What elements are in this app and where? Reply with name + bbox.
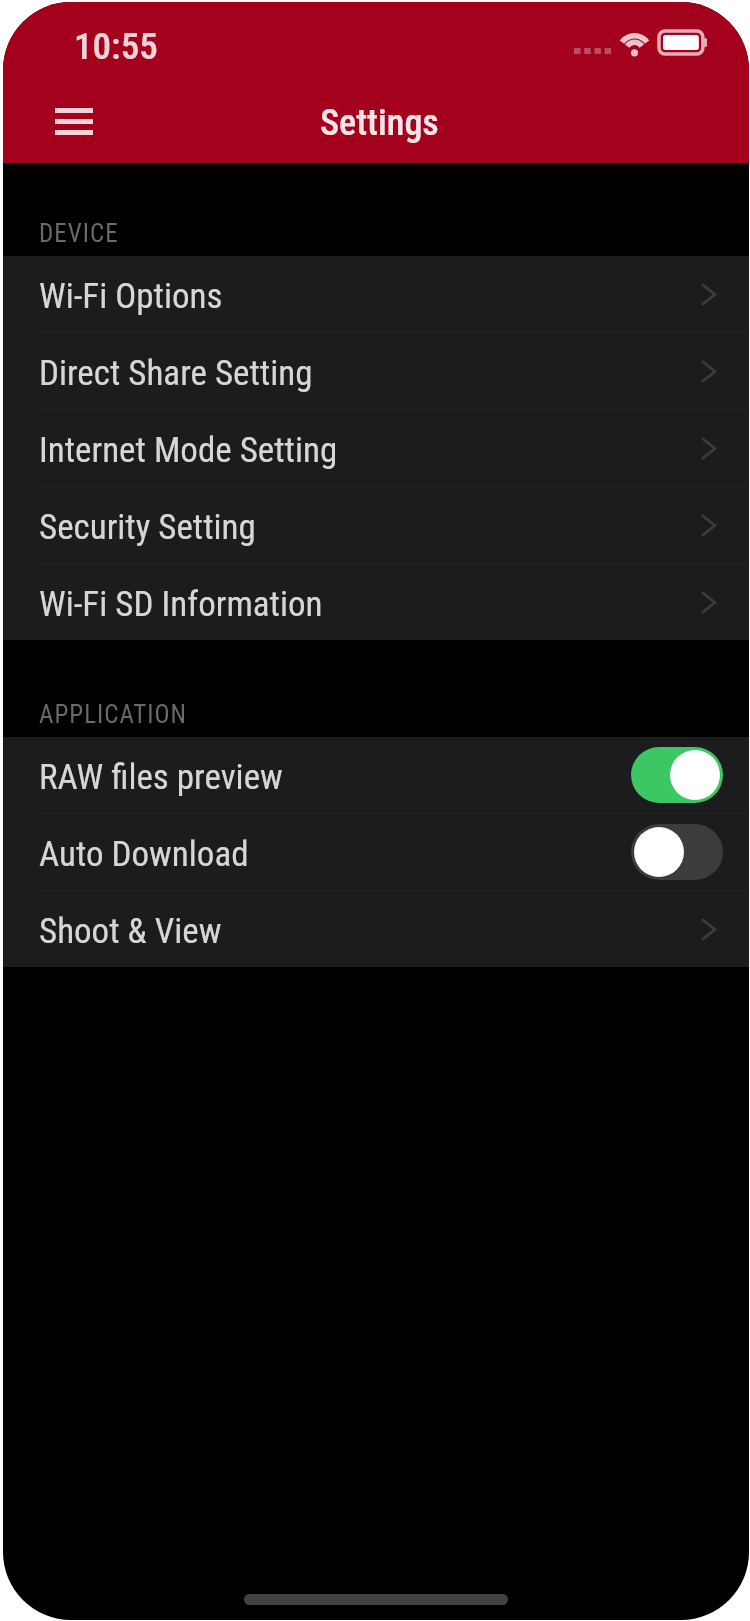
staticText: Auto Download	[39, 834, 249, 875]
staticText: Wi-Fi SD Information	[39, 584, 323, 625]
staticText: Security Setting	[39, 507, 256, 548]
button[interactable]: Open navigation menu	[40, 95, 108, 147]
staticText: Direct Share Setting	[39, 353, 313, 394]
button[interactable]: Wi-Fi Options	[3, 256, 749, 332]
staticText: APPLICATION	[39, 700, 188, 729]
button[interactable]: RAW files preview, on	[631, 747, 723, 803]
staticText: Settings	[320, 102, 439, 144]
button[interactable]: Direct Share Setting	[3, 333, 749, 409]
button[interactable]: Internet Mode Setting	[3, 410, 749, 486]
button[interactable]: Auto Download, off	[631, 824, 723, 880]
button[interactable]: Wi-Fi SD Information	[3, 564, 749, 640]
staticText: Internet Mode Setting	[39, 430, 338, 471]
staticText: DEVICE	[39, 219, 119, 248]
staticText: 10:55	[74, 25, 158, 68]
button[interactable]: RAW files preview	[3, 737, 749, 813]
staticText: RAW files preview	[39, 757, 283, 798]
staticText: Wi-Fi Options	[39, 276, 223, 317]
button[interactable]: Security Setting	[3, 487, 749, 563]
button[interactable]: Shoot & View	[3, 891, 749, 967]
staticText: Shoot & View	[39, 911, 222, 952]
button[interactable]: Auto Download	[3, 814, 749, 890]
